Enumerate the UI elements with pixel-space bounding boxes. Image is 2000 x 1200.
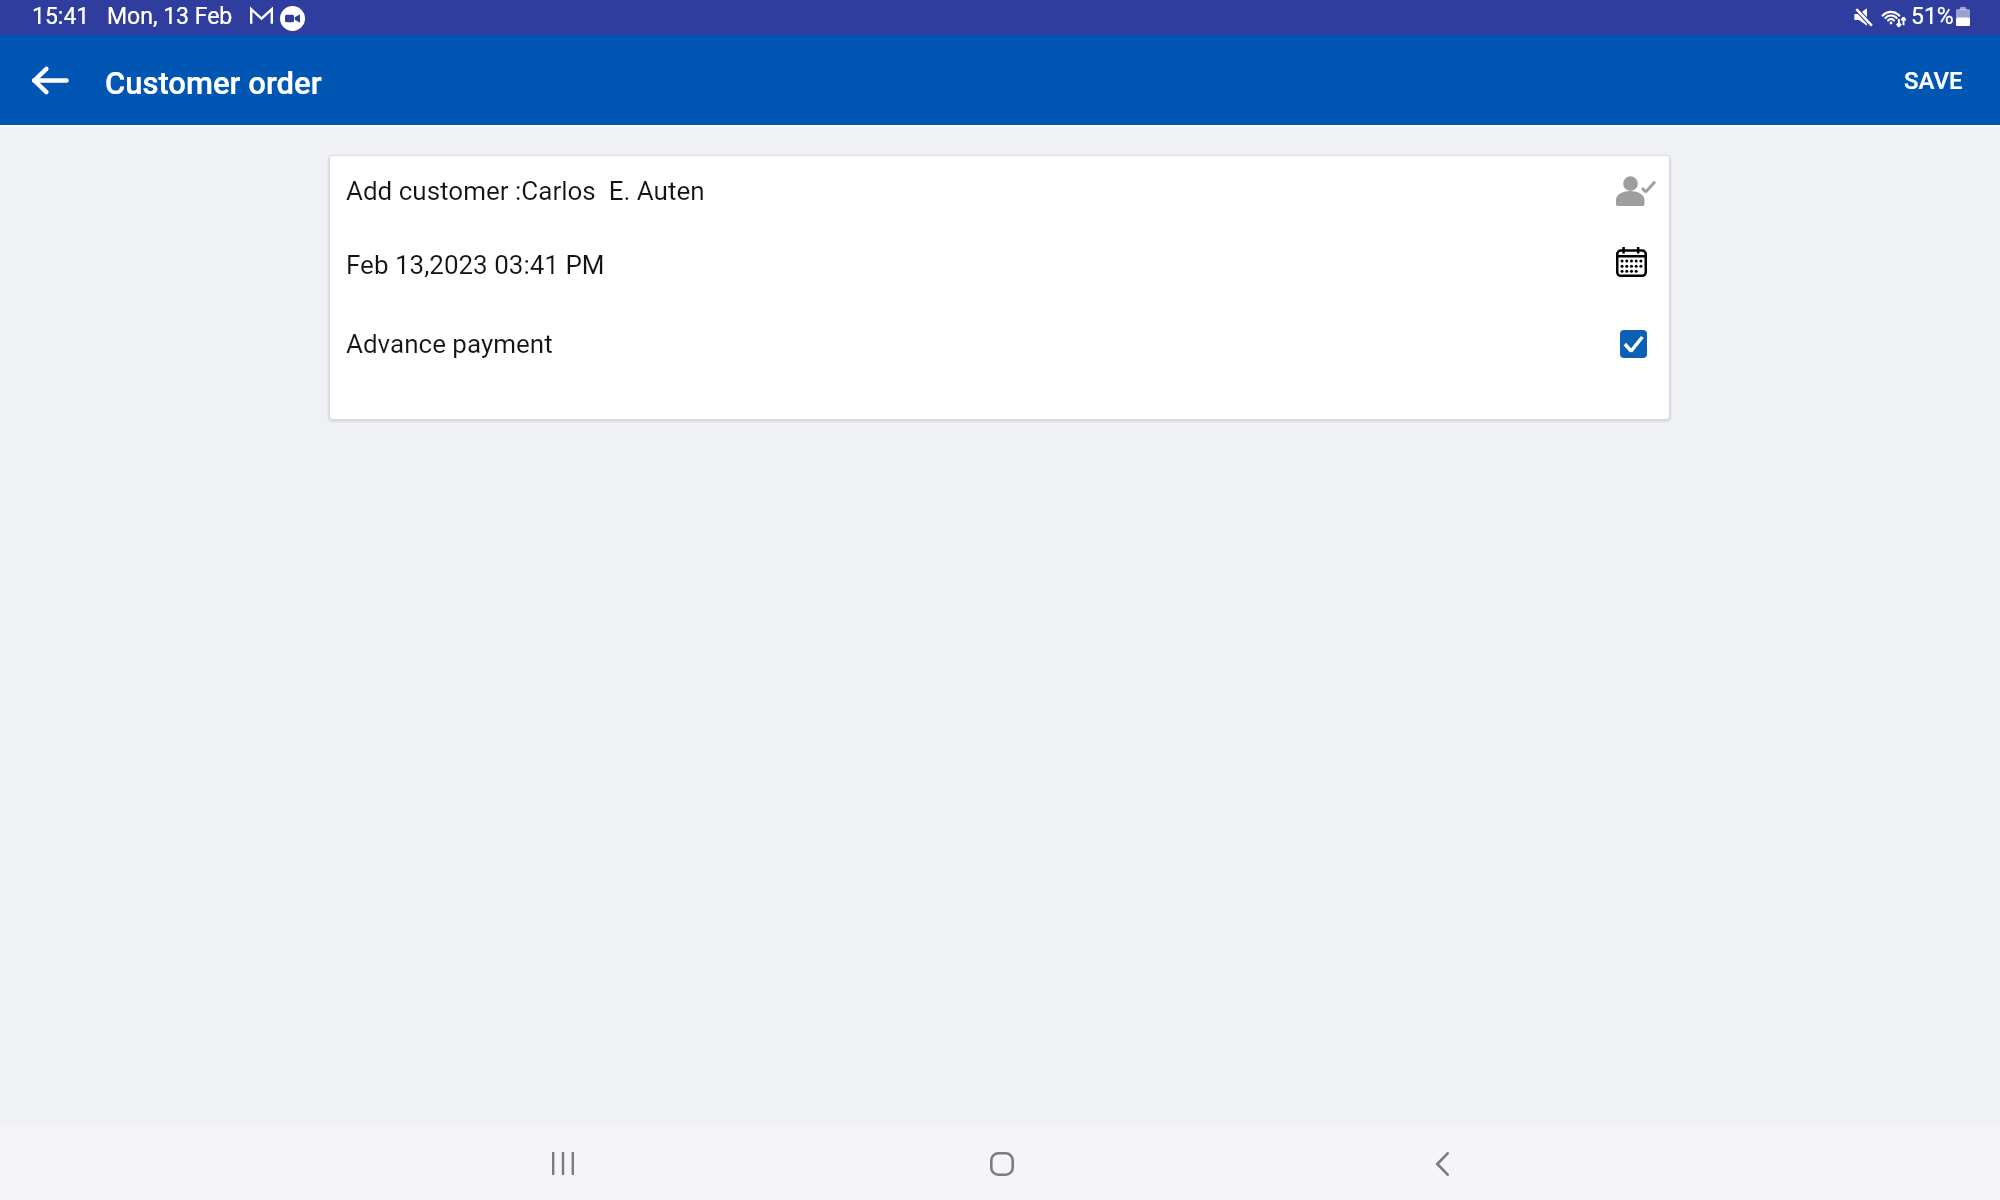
button[interactable]: SAVE xyxy=(1874,35,2000,125)
button[interactable]: Back xyxy=(1398,1127,1486,1200)
button[interactable]: Feb 13,2023 03:41 PM xyxy=(330,224,1669,306)
staticText: 15:41 xyxy=(32,3,90,30)
button[interactable]: Navigate up xyxy=(14,35,86,125)
staticText: SAVE xyxy=(1904,67,1963,95)
staticText: 51% xyxy=(1911,3,1954,30)
other: Choose date xyxy=(1616,247,1647,278)
staticText: Customer order xyxy=(105,65,322,101)
button[interactable]: Recent apps xyxy=(519,1127,607,1200)
button[interactable]: Advance payment xyxy=(330,305,1669,383)
other: Customer selected xyxy=(1616,176,1655,206)
button[interactable]: Advance payment checkbox xyxy=(1620,330,1647,358)
button[interactable]: Home xyxy=(958,1127,1046,1200)
button[interactable]: Add customer :Carlos E. Auten xyxy=(330,157,1669,225)
staticText: Feb 13,2023 03:41 PM xyxy=(346,250,605,280)
staticText: Add customer :Carlos E. Auten xyxy=(346,176,705,206)
staticText: Advance payment xyxy=(346,329,553,359)
staticText: Mon, 13 Feb xyxy=(107,3,233,30)
